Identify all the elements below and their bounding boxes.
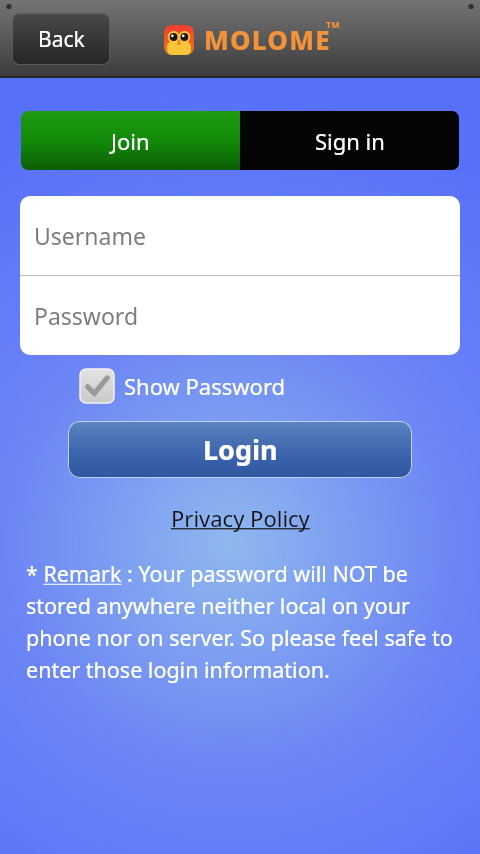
- button[interactable]: Back: [12, 13, 110, 65]
- staticText: Show Password: [124, 371, 286, 401]
- button[interactable]: Sign in: [240, 111, 459, 170]
- button[interactable]: Username: [20, 196, 460, 275]
- staticText: Username: [34, 220, 146, 251]
- button[interactable]: Show Password: [80, 369, 286, 403]
- staticText: MOLOME: [204, 22, 331, 57]
- button[interactable]: Privacy Policy: [165, 501, 316, 535]
- staticText: Privacy Policy: [171, 503, 310, 533]
- staticText: * Remark : Your password will NOT be sto…: [26, 559, 454, 684]
- staticText: Password: [34, 300, 139, 331]
- staticText: Back: [38, 25, 85, 54]
- staticText: Login: [203, 431, 278, 468]
- staticText: Join: [111, 126, 150, 156]
- button[interactable]: Login: [68, 421, 412, 478]
- button[interactable]: Join: [21, 111, 240, 170]
- button[interactable]: Password: [20, 276, 460, 355]
- staticText: Sign in: [315, 126, 385, 156]
- staticText: TM: [326, 18, 340, 30]
